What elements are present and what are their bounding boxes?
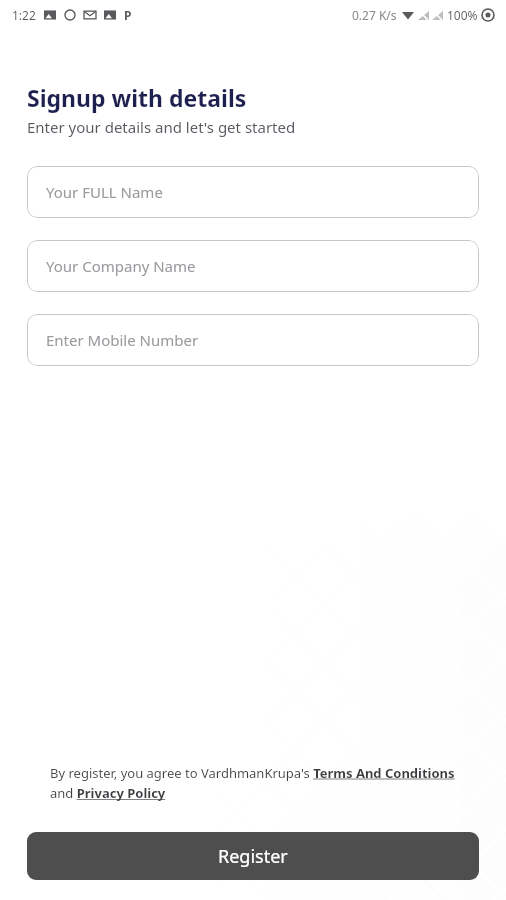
staticText: By register, you agree to VardhmanKrupa'…: [50, 764, 460, 802]
staticText: Register: [218, 844, 288, 869]
button[interactable]: Register: [27, 832, 479, 880]
staticText: Your Company Name: [46, 256, 196, 276]
staticText: Enter Mobile Number: [46, 330, 199, 350]
staticText: Your FULL Name: [46, 182, 163, 202]
button[interactable]: Your Company Name: [27, 240, 479, 292]
button[interactable]: Enter Mobile Number: [27, 314, 479, 366]
staticText: Enter your details and let's get started: [27, 117, 296, 137]
staticText: 100%: [447, 7, 478, 23]
staticText: Signup with details: [27, 82, 247, 113]
button[interactable]: By register, you agree to VardhmanKrupa'…: [50, 764, 460, 802]
staticText: P: [124, 7, 132, 23]
button[interactable]: Your FULL Name: [27, 166, 479, 218]
staticText: 1:22: [12, 7, 36, 23]
staticText: 0.27 K/s: [352, 7, 397, 23]
